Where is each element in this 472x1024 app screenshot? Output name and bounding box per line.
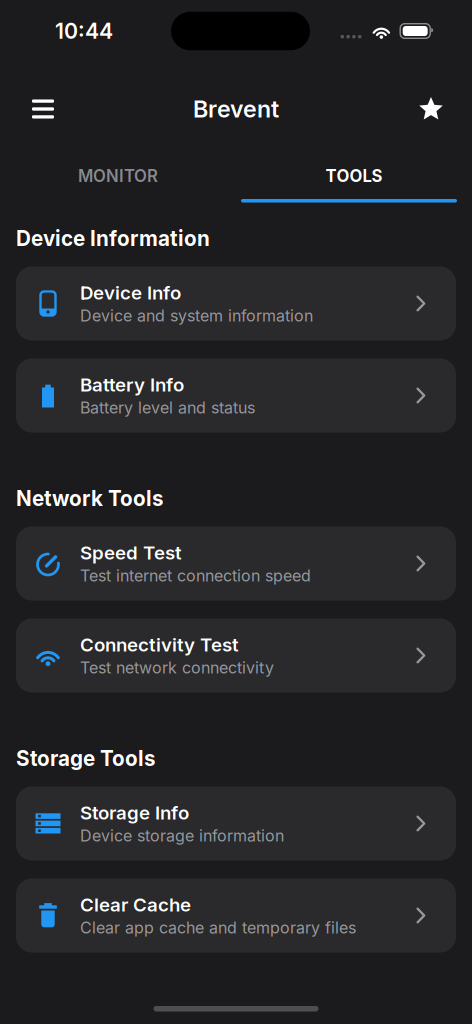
staticText: Connectivity Test — [80, 634, 239, 656]
staticText: Clear app cache and temporary files — [80, 918, 356, 937]
button[interactable]: MONITOR — [0, 159, 236, 193]
staticText: Clear Cache — [80, 894, 191, 916]
staticText: Speed Test — [80, 542, 182, 564]
button[interactable]: Connectivity Test — [16, 618, 456, 692]
staticText: Storage Tools — [16, 747, 156, 770]
staticText: Network Tools — [16, 487, 164, 510]
staticText: 10:44 — [55, 19, 113, 43]
staticText: Battery level and status — [80, 398, 255, 417]
button[interactable]: Clear Cache — [16, 878, 456, 952]
staticText: Device Information — [16, 227, 210, 250]
button[interactable]: Device Info — [16, 266, 456, 340]
staticText: Test internet connection speed — [80, 566, 311, 585]
staticText: Test network connectivity — [80, 658, 274, 677]
button[interactable]: Menu — [15, 84, 71, 134]
staticText: Device storage information — [80, 826, 284, 845]
button[interactable]: Battery Info — [16, 358, 456, 432]
staticText: TOOLS — [325, 166, 382, 186]
staticText: Device Info — [80, 282, 181, 304]
staticText: Brevent — [193, 96, 279, 122]
staticText: Storage Info — [80, 802, 189, 824]
staticText: MONITOR — [78, 166, 158, 186]
button[interactable]: Speed Test — [16, 526, 456, 600]
staticText: Battery Info — [80, 374, 184, 396]
button[interactable]: TOOLS — [236, 159, 472, 193]
button[interactable]: Storage Info — [16, 786, 456, 860]
button[interactable]: Favorite — [403, 84, 459, 134]
staticText: Device and system information — [80, 306, 313, 325]
